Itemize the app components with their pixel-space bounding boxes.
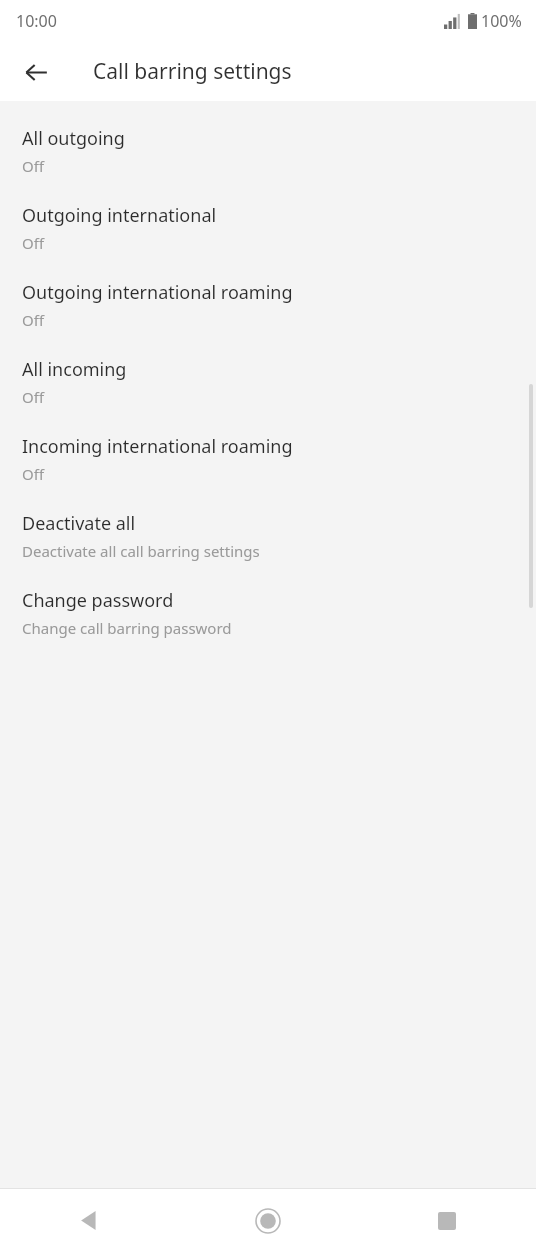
staticText: Deactivate all call barring settings <box>22 541 260 561</box>
staticText: Change password <box>22 588 174 613</box>
button[interactable]: Back <box>12 48 60 96</box>
staticText: Off <box>22 387 45 407</box>
button[interactable]: Back <box>0 1189 178 1252</box>
staticText: Incoming international roaming <box>22 434 293 459</box>
button[interactable]: Change password <box>0 575 536 652</box>
staticText: Off <box>22 156 45 176</box>
staticText: Call barring settings <box>93 57 292 86</box>
staticText: Deactivate all <box>22 511 136 536</box>
button[interactable]: Home <box>178 1189 357 1252</box>
staticText: Off <box>22 464 45 484</box>
button[interactable]: All outgoing <box>0 113 536 190</box>
staticText: Change call barring password <box>22 618 232 638</box>
button[interactable]: All incoming <box>0 344 536 421</box>
staticText: Outgoing international roaming <box>22 280 293 305</box>
button[interactable]: Outgoing international roaming <box>0 267 536 344</box>
button[interactable]: Incoming international roaming <box>0 421 536 498</box>
staticText: 100% <box>481 10 522 32</box>
staticText: Outgoing international <box>22 203 217 228</box>
staticText: 10:00 <box>16 10 57 32</box>
button[interactable]: Recent apps <box>357 1189 536 1252</box>
staticText: All incoming <box>22 357 127 382</box>
button[interactable]: Outgoing international <box>0 190 536 267</box>
staticText: All outgoing <box>22 126 125 151</box>
button[interactable]: Deactivate all <box>0 498 536 575</box>
staticText: Off <box>22 310 45 330</box>
staticText: Off <box>22 233 45 253</box>
